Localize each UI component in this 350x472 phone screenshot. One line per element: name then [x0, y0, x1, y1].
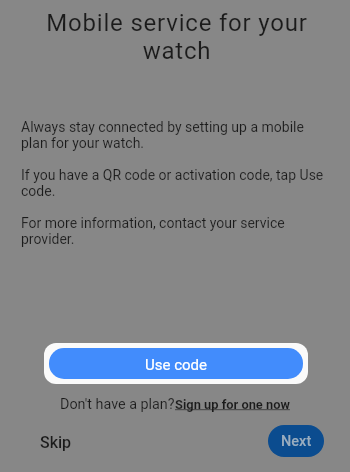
- staticText: Don't have a plan?: [60, 396, 175, 413]
- staticText: Next: [281, 433, 312, 450]
- button[interactable]: Next: [268, 425, 324, 457]
- button[interactable]: Use code: [44, 343, 308, 384]
- staticText: If you have a QR code or activation code…: [21, 167, 330, 199]
- staticText: Mobile service for your watch: [28, 9, 326, 65]
- button[interactable]: Skip: [27, 425, 85, 460]
- staticText: Use code: [145, 356, 207, 374]
- button[interactable]: Sign up for one now: [175, 397, 290, 412]
- staticText: Always stay connected by setting up a mo…: [21, 119, 330, 151]
- staticText: For more information, contact your servi…: [21, 215, 330, 247]
- staticText: Skip: [40, 433, 72, 452]
